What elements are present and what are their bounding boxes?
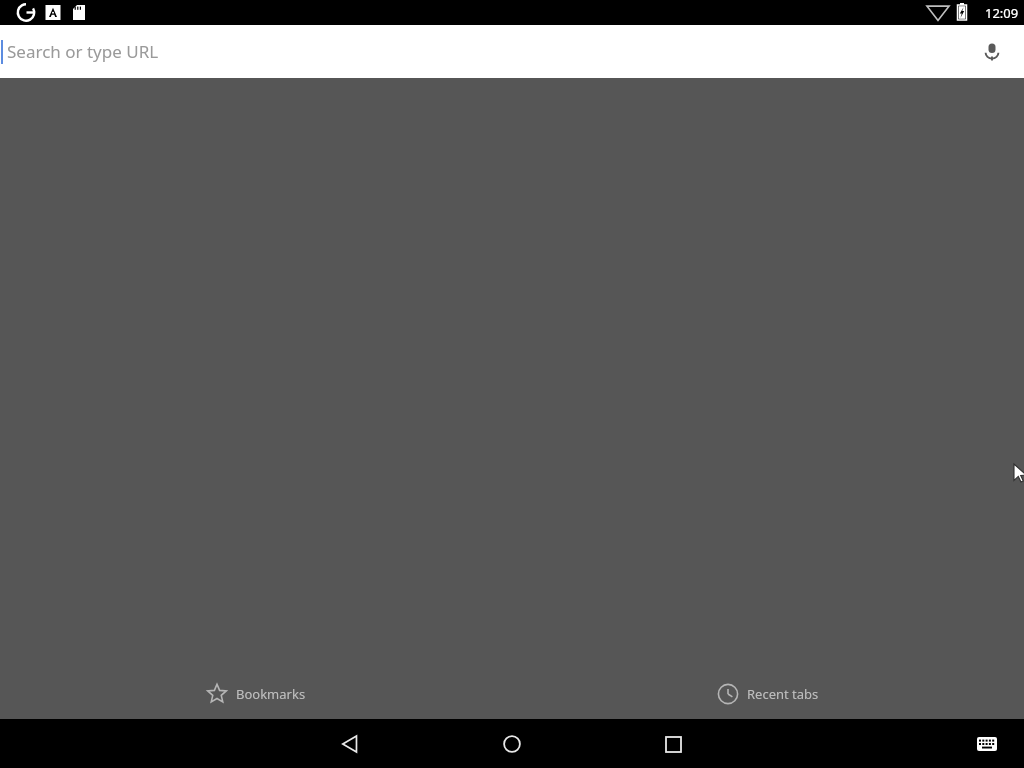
- button[interactable]: Search or type URL: [0, 25, 1024, 78]
- button[interactable]: Home: [488, 720, 536, 768]
- button[interactable]: Back: [326, 720, 374, 768]
- staticText: 12:09: [985, 4, 1019, 22]
- button[interactable]: Switch keyboard: [969, 726, 1005, 762]
- staticText: Search or type URL: [7, 40, 159, 63]
- staticText: Recent tabs: [747, 685, 819, 703]
- staticText: Bookmarks: [236, 685, 306, 703]
- button[interactable]: Bookmarks: [202, 677, 310, 711]
- button[interactable]: Recent tabs: [713, 677, 823, 711]
- button[interactable]: Recent apps: [649, 720, 697, 768]
- button[interactable]: Voice search: [970, 30, 1014, 74]
